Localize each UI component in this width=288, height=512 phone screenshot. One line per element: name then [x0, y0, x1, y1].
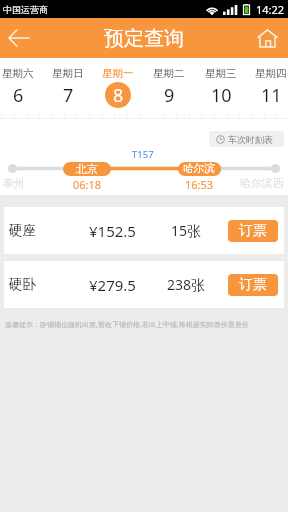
staticText: 温馨提示：卧铺铺位随机出票,暂收下铺价格,若出上中铺,将根据实际票价退差价: [5, 320, 249, 330]
button[interactable]: Back: [0, 18, 36, 58]
staticText: 06:18: [73, 177, 102, 192]
staticText: 星期二: [153, 67, 185, 80]
button[interactable]: Home: [247, 18, 288, 58]
button[interactable]: 订票: [228, 274, 278, 296]
staticText: 中国运营商: [3, 4, 48, 15]
staticText: 车次时刻表: [228, 134, 273, 145]
staticText: 11: [261, 83, 282, 108]
staticText: ¥152.5: [89, 221, 136, 241]
button[interactable]: 订票: [228, 220, 278, 242]
staticText: T157: [132, 148, 154, 161]
staticText: 硬座: [9, 222, 36, 239]
staticText: 9: [164, 83, 175, 108]
staticText: 订票: [239, 222, 267, 240]
staticText: 星期日: [52, 67, 84, 80]
staticText: 北京: [76, 162, 98, 176]
staticText: 10: [211, 83, 232, 108]
staticText: 星期四: [255, 67, 287, 80]
staticText: 硬卧: [9, 276, 36, 293]
button[interactable]: 车次时刻表: [209, 131, 284, 147]
staticText: 星期一: [102, 67, 134, 80]
staticText: 预定查询: [104, 26, 184, 51]
staticText: 星期三: [205, 67, 237, 80]
staticText: 15张: [171, 221, 202, 240]
staticText: 订票: [239, 276, 267, 294]
button[interactable]: 硬座: [4, 207, 284, 254]
button[interactable]: 星期三: [196, 58, 246, 119]
staticText: 6: [13, 83, 24, 108]
staticText: 14:22: [256, 2, 285, 17]
staticText: 泰州: [3, 176, 25, 190]
button[interactable]: 硬卧: [4, 261, 284, 308]
staticText: 238张: [167, 275, 206, 294]
button[interactable]: 星期日: [43, 58, 93, 119]
staticText: 7: [63, 83, 74, 108]
button[interactable]: 星期四: [246, 58, 288, 119]
staticText: 星期六: [2, 67, 34, 80]
staticText: 16:53: [185, 177, 214, 192]
button[interactable]: 星期六: [0, 58, 43, 119]
staticText: 8: [113, 83, 124, 108]
staticText: 哈尔滨: [183, 162, 216, 176]
button[interactable]: 星期一: [93, 58, 143, 119]
button[interactable]: 星期二: [144, 58, 194, 119]
staticText: 哈尔滨西: [240, 176, 284, 190]
staticText: ¥279.5: [89, 275, 136, 295]
